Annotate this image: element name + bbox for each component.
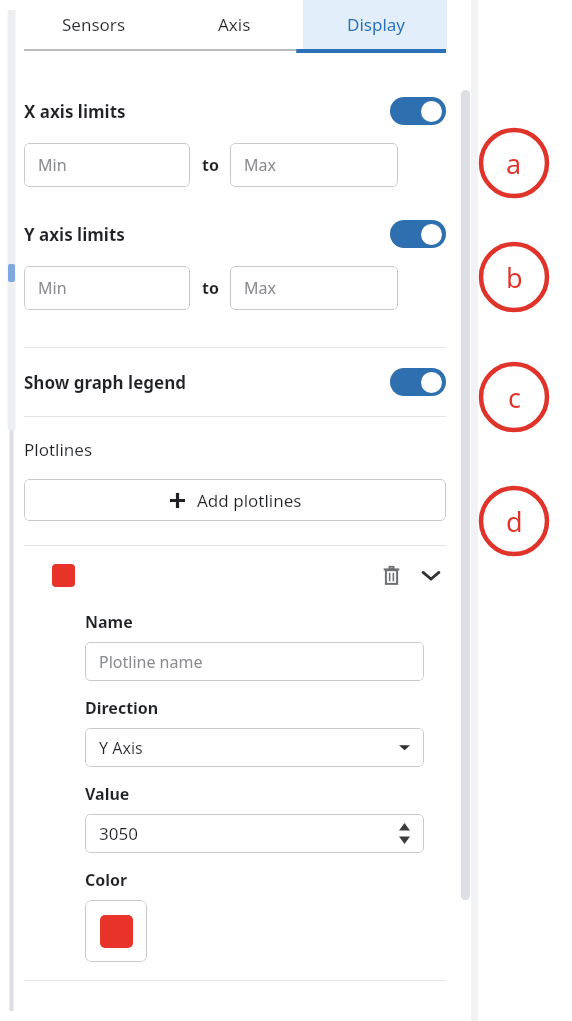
button[interactable]: Delete plotline	[376, 561, 406, 589]
staticText: Show graph legend	[24, 371, 186, 394]
button[interactable]: Toggle	[390, 220, 446, 248]
button[interactable]: Y Axis	[85, 728, 424, 767]
button[interactable]: Plotline colour	[52, 564, 75, 587]
button[interactable]: Toggle	[390, 97, 446, 125]
staticText: to	[202, 277, 219, 299]
button[interactable]: Show graph legend	[24, 348, 446, 416]
staticText: Min	[38, 154, 67, 176]
staticText: d	[506, 503, 523, 540]
staticText: Value	[85, 783, 130, 805]
button[interactable]: Max	[230, 266, 398, 310]
staticText: Y axis limits	[24, 223, 125, 246]
button[interactable]: Toggle	[390, 368, 446, 396]
button[interactable]: Sensors	[24, 0, 164, 49]
staticText: Sensors	[62, 13, 126, 36]
button[interactable]: 3050	[85, 814, 424, 853]
button[interactable]: Min	[24, 266, 190, 310]
staticText: Color	[85, 869, 128, 891]
staticText: Max	[244, 154, 276, 176]
staticText: Display	[347, 13, 405, 36]
button[interactable]: Min	[24, 143, 190, 187]
staticText: 3050	[99, 822, 138, 845]
button[interactable]: Max	[230, 143, 398, 187]
staticText: Name	[85, 611, 133, 633]
staticText: Add plotlines	[197, 489, 302, 512]
staticText: Max	[244, 277, 276, 299]
staticText: Plotline name	[99, 651, 203, 673]
staticText: Plotlines	[24, 438, 93, 461]
staticText: Y Axis	[99, 737, 143, 759]
staticText: to	[202, 154, 219, 176]
button[interactable]: Collapse plotline	[416, 561, 446, 589]
button[interactable]: Plotline name	[85, 642, 424, 681]
button[interactable]: Pick colour	[85, 900, 147, 962]
staticText: a	[506, 145, 522, 182]
staticText: X axis limits	[24, 100, 126, 123]
staticText: Axis	[218, 13, 251, 36]
button[interactable]: Axis	[164, 0, 305, 49]
button[interactable]: Add plotlines	[24, 479, 446, 521]
staticText: Min	[38, 277, 67, 299]
staticText: Direction	[85, 697, 159, 719]
staticText: c	[508, 379, 521, 416]
staticText: b	[506, 259, 523, 296]
button[interactable]: Display	[305, 0, 446, 49]
